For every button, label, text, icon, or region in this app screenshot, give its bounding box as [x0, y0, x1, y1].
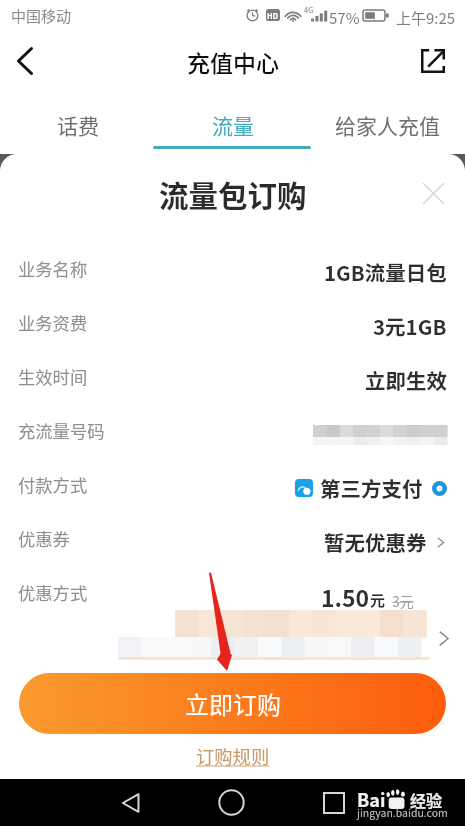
staticText: 中国移动 [11, 5, 72, 27]
staticText: 业务资费 [18, 310, 88, 335]
staticText: 立即生效 [365, 365, 447, 395]
button[interactable]: 给家人充值 [310, 95, 465, 154]
button[interactable]: Back [3, 39, 47, 83]
staticText: 流量包订购 [159, 173, 307, 216]
staticText: Bai [357, 786, 386, 812]
staticText: 经验 [410, 788, 443, 811]
button[interactable]: 充流量号码 [0, 404, 465, 458]
staticText: 优惠方式 [18, 580, 88, 605]
staticText: 业务名称 [18, 256, 88, 281]
button[interactable]: 订购规则 [196, 743, 270, 769]
staticText: 4G [304, 4, 314, 15]
button[interactable]: Back [112, 784, 149, 821]
staticText: 付款方式 [18, 472, 88, 497]
staticText: 上午9:25 [396, 7, 456, 29]
button[interactable]: 生效时间 [0, 350, 465, 404]
staticText: 生效时间 [18, 364, 88, 389]
staticText: 优惠券 [18, 526, 70, 551]
staticText: 流量 [212, 110, 254, 140]
staticText: 给家人充值 [335, 110, 440, 140]
button[interactable]: 优惠券 [0, 512, 465, 566]
staticText: 3元 [392, 591, 414, 611]
staticText: jingyan.baidu.com [357, 805, 448, 820]
staticText: 订购规则 [196, 743, 270, 769]
button[interactable]: Close [416, 176, 450, 210]
button[interactable]: Share [411, 39, 455, 83]
button[interactable]: 业务名称 [0, 242, 465, 296]
button[interactable]: 优惠方式 [0, 566, 465, 620]
staticText: 1.50 [321, 580, 370, 613]
staticText: 立即订购 [185, 686, 281, 721]
staticText: 暂无优惠券 [324, 527, 427, 557]
staticText: 57% [329, 7, 360, 29]
staticText: HD [267, 10, 279, 21]
staticText: 3元1GB [373, 311, 447, 341]
staticText: 元 [370, 589, 386, 611]
button[interactable]: Home [213, 784, 250, 821]
staticText: 第三方支付 [320, 473, 423, 503]
button[interactable]: 付款方式 [0, 458, 465, 512]
staticText: 充流量号码 [18, 418, 105, 443]
button[interactable]: 话费 [0, 95, 155, 154]
button[interactable]: 业务资费 [0, 296, 465, 350]
staticText: 话费 [57, 110, 99, 140]
button[interactable]: 立即订购 [19, 673, 446, 734]
staticText: 充值中心 [187, 45, 279, 78]
button[interactable]: 流量 [155, 95, 310, 154]
staticText: 1GB流量日包 [324, 257, 447, 287]
button[interactable]: Recents [315, 784, 352, 821]
